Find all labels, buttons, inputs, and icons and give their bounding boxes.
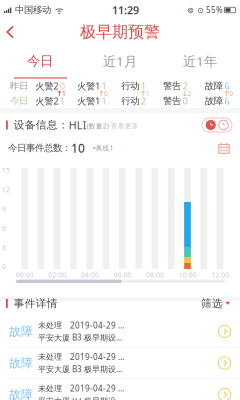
staticText: 2019-04-29 10:33	[62, 352, 128, 362]
staticText: 筛选	[201, 297, 223, 310]
staticText: 极早期预警	[80, 22, 160, 42]
staticText: 1	[141, 80, 146, 92]
staticText: 事件详情	[8, 297, 58, 310]
staticText: 0	[2, 262, 6, 271]
staticText: 故障	[9, 324, 33, 339]
staticText: 平安大厦 B3 极早期设备信息	[38, 364, 128, 374]
staticText: 离线1	[88, 144, 114, 152]
staticText: 2	[141, 95, 146, 107]
button[interactable]: 筛选	[201, 297, 230, 310]
button[interactable]: 返回	[0, 20, 21, 44]
staticText: 2019-04-29 10:35	[62, 320, 128, 331]
button[interactable]: 选择日期	[218, 142, 230, 154]
staticText: 00:00	[16, 271, 34, 279]
staticText: 未处理	[38, 352, 62, 362]
staticText: 0	[182, 95, 187, 107]
staticText: 火警2	[35, 95, 58, 107]
staticText: 1	[101, 95, 106, 107]
staticText: 2	[187, 89, 191, 98]
staticText: 6	[2, 224, 6, 233]
staticText: 中国移动	[12, 4, 51, 16]
staticText: 查看更多	[109, 122, 139, 130]
staticText: 故障	[9, 387, 33, 400]
button[interactable]: 切换图表类型	[202, 118, 232, 132]
staticText: 2	[182, 80, 187, 92]
button[interactable]: 故障	[0, 347, 240, 378]
staticText: 近1年	[183, 52, 217, 70]
staticText: 今日	[27, 53, 53, 69]
staticText: 10:00	[179, 271, 197, 279]
staticText: 04:00	[81, 271, 99, 279]
staticText: 故障	[9, 356, 33, 370]
staticText: 0	[60, 80, 65, 92]
staticText: 火警1	[77, 80, 100, 92]
button[interactable]: 故障	[0, 316, 240, 347]
staticText: (数量2)	[87, 122, 109, 130]
staticText: 02:00	[48, 271, 66, 279]
staticText: 0	[229, 89, 233, 98]
staticText: 火警2	[35, 80, 58, 92]
staticText: 0	[104, 89, 108, 98]
staticText: 6	[224, 80, 229, 92]
button[interactable]: 近1年	[160, 43, 240, 78]
staticText: 06:00	[113, 271, 131, 279]
button[interactable]: 近1月	[80, 43, 160, 78]
staticText: 昨日	[10, 80, 28, 92]
staticText: ᯤ	[51, 4, 64, 16]
staticText: 故障	[205, 80, 223, 92]
staticText: 警告	[163, 80, 181, 92]
staticText: 11:29	[112, 3, 139, 17]
staticText: 警告	[163, 95, 181, 107]
staticText: 设备信息：	[8, 118, 69, 131]
staticText: 15	[2, 166, 10, 175]
staticText: 近1月	[103, 52, 137, 70]
staticText: 1	[101, 80, 106, 92]
staticText: 1	[146, 89, 150, 98]
staticText: 平安大厦 B3 极早期设备信息	[38, 332, 128, 343]
staticText: 火警1	[77, 95, 100, 107]
staticText: 6	[224, 95, 229, 107]
staticText: 1	[62, 89, 66, 98]
button[interactable]: 查看更多	[109, 121, 139, 129]
button[interactable]: 故障	[0, 379, 240, 400]
staticText: 平安大厦 B3 极早期设备信息	[38, 395, 128, 400]
staticText: 行动	[121, 95, 139, 107]
staticText: 2019-04-29 10:33	[62, 383, 128, 394]
staticText: 9	[2, 204, 6, 213]
staticText: 行动	[121, 80, 139, 92]
staticText: 今日事件总数：	[8, 142, 71, 154]
staticText: 3	[2, 243, 6, 252]
staticText: 今日	[10, 95, 28, 107]
staticText: 1	[60, 95, 65, 107]
button[interactable]: 今日	[0, 43, 80, 78]
staticText: 10	[71, 140, 85, 156]
staticText: 08:00	[146, 271, 164, 279]
staticText: 未处理	[38, 320, 62, 330]
staticText: 未处理	[38, 384, 62, 393]
staticText: 故障	[205, 95, 223, 107]
staticText: 12:00	[211, 271, 229, 279]
staticText: ⊚ ⊙ 55%	[187, 5, 223, 15]
staticText: HLI	[69, 118, 87, 132]
staticText: 12	[2, 185, 10, 194]
